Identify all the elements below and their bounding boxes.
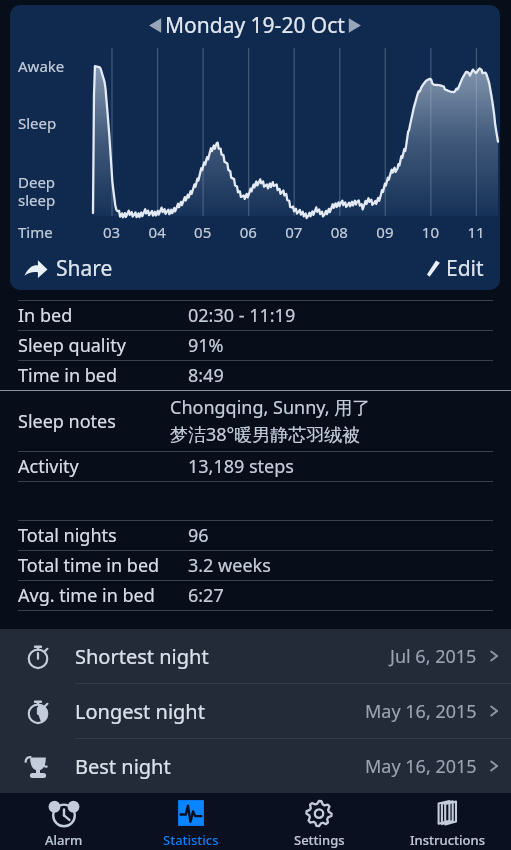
staticText: Total time in bed (18, 553, 160, 578)
staticText: Best night (75, 753, 171, 780)
staticText: Sleep notes (18, 409, 116, 434)
staticText: Edit (446, 254, 484, 283)
staticText: Chongqing, Sunny, 用了 (170, 395, 371, 420)
button[interactable]: Activity (0, 452, 511, 481)
button[interactable]: Sleep notes (0, 391, 511, 451)
staticText: Avg. time in bed (18, 583, 155, 608)
button[interactable]: Statistics (127, 793, 255, 850)
staticText: Total nights (18, 523, 117, 548)
button[interactable]: Shortest night (0, 629, 511, 683)
button[interactable]: Avg. time in bed (0, 581, 511, 610)
staticText: 91% (188, 333, 224, 358)
staticText: Jul 6, 2015 (390, 644, 477, 669)
staticText: Monday 19-20 Oct (165, 11, 345, 40)
button[interactable]: Best night (0, 739, 511, 793)
button[interactable]: Sleep quality (0, 331, 511, 360)
staticText: 02:30 - 11:19 (188, 303, 296, 328)
staticText: Statistics (163, 831, 219, 849)
staticText: 梦洁38°暖男静芯羽绒被 (170, 422, 361, 447)
button[interactable]: Edit (418, 248, 488, 289)
staticText: Time in bed (18, 363, 118, 388)
button[interactable]: Next night (345, 5, 500, 46)
button[interactable]: Settings (255, 793, 383, 850)
button[interactable]: Share (20, 248, 117, 289)
staticText: Instructions (410, 831, 485, 849)
button[interactable]: Total nights (0, 521, 511, 550)
staticText: May 16, 2015 (365, 699, 477, 724)
button[interactable]: Time in bed (0, 361, 511, 390)
staticText: 96 (188, 523, 209, 548)
button[interactable]: Longest night (0, 684, 511, 738)
staticText: Shortest night (75, 643, 209, 670)
staticText: In bed (18, 303, 73, 328)
staticText: 6:27 (188, 583, 224, 608)
staticText: Alarm (45, 831, 83, 849)
staticText: Activity (18, 454, 79, 479)
staticText: Longest night (75, 698, 205, 725)
staticText: 8:49 (188, 363, 224, 388)
staticText: 13,189 steps (188, 454, 294, 479)
staticText: Share (56, 254, 113, 283)
staticText: 3.2 weeks (188, 553, 271, 578)
button[interactable]: Total time in bed (0, 551, 511, 580)
staticText: Settings (294, 831, 345, 849)
button[interactable]: Alarm (0, 793, 127, 850)
staticText: Sleep quality (18, 333, 126, 358)
staticText: May 16, 2015 (365, 754, 477, 779)
button[interactable]: Previous night (10, 5, 165, 46)
button[interactable]: Instructions (383, 793, 511, 850)
button[interactable]: In bed (0, 301, 511, 330)
